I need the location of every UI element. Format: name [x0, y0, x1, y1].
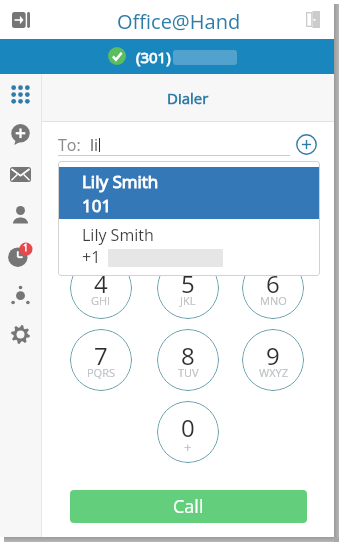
staticText: +1 [82, 246, 101, 268]
staticText: 2 [181, 195, 195, 228]
button[interactable]: Mail [0, 154, 41, 194]
button[interactable]: Exit [306, 11, 320, 28]
staticText: 1 [23, 241, 29, 253]
staticText: PQRS [87, 365, 115, 380]
button[interactable]: 7 [70, 329, 132, 391]
button[interactable] [58, 219, 320, 275]
button[interactable]: 9 [242, 329, 304, 391]
button[interactable]: 6 [242, 257, 304, 319]
button[interactable]: Add contact [296, 134, 317, 155]
staticText: WXYZ [259, 365, 288, 380]
staticText: GHI [91, 293, 111, 308]
staticText: Lily Smith [82, 224, 154, 246]
staticText: li [90, 134, 99, 156]
button[interactable]: 3 [242, 185, 304, 247]
staticText: (301) [136, 47, 171, 67]
button[interactable]: Contacts [0, 194, 41, 234]
button[interactable]: Sign out [12, 12, 30, 28]
staticText: JKL [180, 293, 196, 308]
staticText: 101 [82, 194, 112, 217]
staticText: 6 [266, 267, 280, 300]
button[interactable]: 1 [70, 185, 132, 247]
staticText: 5 [181, 267, 195, 300]
button[interactable]: 8 [157, 329, 219, 391]
staticText: 0 [181, 411, 195, 444]
button[interactable]: Call history [0, 234, 41, 274]
staticText: 8 [181, 339, 195, 372]
staticText: Office@Hand [117, 8, 241, 35]
staticText: TUV [178, 365, 199, 380]
button[interactable]: Call [70, 490, 307, 523]
staticText: 3 [266, 195, 280, 228]
button[interactable]: New message [0, 114, 41, 154]
button[interactable]: Dialpad [0, 74, 41, 114]
button[interactable]: 2 [157, 185, 219, 247]
button[interactable] [58, 167, 320, 219]
staticText: 7 [94, 339, 108, 372]
button[interactable]: Conference [0, 274, 41, 314]
staticText: To: [58, 134, 81, 156]
staticText: + [184, 438, 192, 456]
staticText: 1 [94, 195, 108, 228]
button[interactable]: Settings [0, 314, 41, 354]
staticText: Dialer [167, 88, 209, 108]
staticText: Call [173, 494, 204, 519]
button[interactable]: 4 [70, 257, 132, 319]
staticText: 9 [266, 339, 280, 372]
staticText: Lily Smith [82, 170, 159, 193]
staticText: 4 [94, 267, 108, 300]
button[interactable]: 0 [157, 401, 219, 463]
button[interactable]: 5 [157, 257, 219, 319]
staticText: MNO [260, 293, 287, 308]
